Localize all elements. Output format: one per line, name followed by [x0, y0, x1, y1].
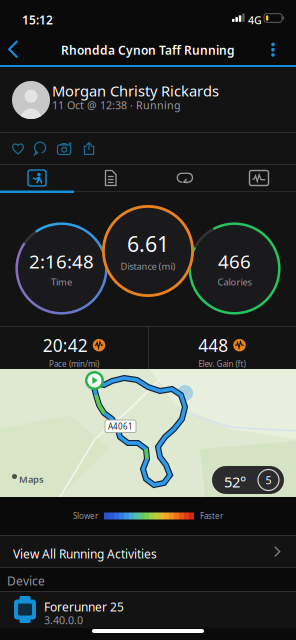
button[interactable]: Back [8, 34, 36, 66]
button[interactable]: Comment [28, 133, 52, 164]
button[interactable]: Share [77, 133, 101, 164]
staticText: 11 Oct @ 12:38 · Running [52, 98, 181, 112]
staticText: 4G [248, 13, 262, 27]
button[interactable]: Charts [222, 165, 296, 191]
button[interactable]: Like [6, 133, 30, 164]
button[interactable]: More options [264, 34, 282, 66]
staticText: Calories [217, 276, 251, 288]
staticText: Morgan Christy Rickards [52, 81, 219, 100]
staticText: 3.40.0.0 [44, 613, 83, 627]
button[interactable]: Details [74, 165, 148, 191]
staticText: Device [7, 573, 45, 589]
button[interactable]: View All Running Activities [0, 535, 296, 568]
staticText: 20:42 [43, 334, 88, 357]
staticText: A4061 [108, 421, 133, 432]
staticText: 2:16:48 [29, 249, 94, 274]
staticText: Elev. Gain (ft) [198, 359, 245, 369]
button[interactable]: Morgan Christy Rickards [0, 67, 296, 132]
button[interactable]: Laps [148, 165, 222, 191]
staticText: View All Running Activities [13, 546, 157, 562]
staticText: Pace (min/mi) [49, 359, 99, 369]
button[interactable]: Forerunner 25 [0, 591, 296, 628]
button[interactable]: Summary [0, 165, 74, 191]
staticText: Slower [73, 511, 98, 521]
staticText: 5 [265, 473, 271, 487]
staticText: Rhondda Cynon Taff Running [61, 42, 235, 58]
staticText: Faster [200, 511, 223, 521]
button[interactable]: Add photo [52, 133, 78, 164]
staticText: Time [51, 276, 72, 288]
staticText: Distance (mi) [120, 260, 175, 272]
staticText: Forerunner 25 [44, 599, 124, 615]
staticText: Maps [19, 473, 44, 485]
staticText: 6.61 [127, 230, 169, 258]
staticText: 466 [218, 249, 251, 274]
staticText: 15:12 [22, 12, 53, 28]
staticText: 52° [224, 472, 246, 491]
staticText: 448 [198, 334, 228, 357]
